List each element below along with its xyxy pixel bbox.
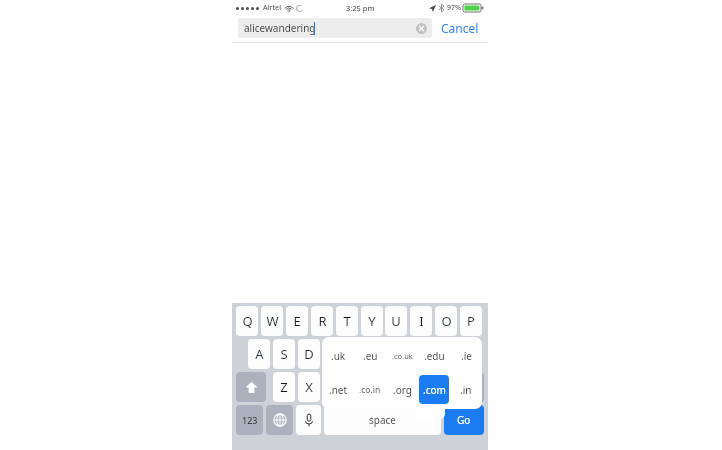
button[interactable]: Y: [361, 306, 383, 336]
staticText: .com: [423, 383, 446, 397]
button[interactable]: Backspace: [454, 372, 484, 402]
staticText: .eu: [363, 349, 378, 363]
staticText: W: [266, 312, 279, 330]
button[interactable]: Dictate: [296, 405, 321, 435]
staticText: .ie: [461, 349, 472, 363]
staticText: K: [430, 345, 439, 363]
staticText: V: [355, 378, 363, 396]
button[interactable]: Change keyboard: [266, 405, 293, 435]
staticText: Y: [368, 312, 376, 330]
staticText: C: [330, 378, 339, 396]
button[interactable]: V: [348, 372, 370, 402]
staticText: 3:25 pm: [346, 3, 375, 13]
button[interactable]: .org: [386, 375, 418, 404]
staticText: D: [304, 345, 314, 363]
staticText: 123: [242, 414, 258, 426]
button[interactable]: .eu: [354, 341, 386, 371]
button[interactable]: P: [460, 306, 482, 336]
button[interactable]: alicewandering: [238, 18, 432, 38]
button[interactable]: Clear text: [416, 23, 427, 34]
button[interactable]: A: [248, 339, 270, 369]
button[interactable]: Cancel: [436, 14, 484, 42]
staticText: X: [305, 378, 313, 396]
staticText: U: [391, 312, 401, 330]
button[interactable]: R: [311, 306, 333, 336]
button[interactable]: M: [423, 372, 445, 402]
staticText: E: [293, 312, 301, 330]
button[interactable]: J: [398, 339, 420, 369]
button[interactable]: U: [385, 306, 407, 336]
button[interactable]: Z: [273, 372, 295, 402]
button[interactable]: C: [323, 372, 345, 402]
staticText: space: [369, 413, 396, 427]
staticText: T: [343, 312, 351, 330]
staticText: L: [456, 345, 463, 363]
staticText: M: [428, 378, 440, 396]
staticText: .co.in: [359, 384, 381, 396]
staticText: alicewandering: [244, 21, 316, 35]
staticText: .edu: [424, 349, 445, 363]
button[interactable]: K: [423, 339, 445, 369]
button[interactable]: Q: [236, 306, 258, 336]
button[interactable]: F: [323, 339, 345, 369]
button[interactable]: .co.uk: [386, 341, 418, 371]
staticText: Go: [457, 413, 471, 427]
button[interactable]: .in: [450, 375, 482, 404]
staticText: R: [318, 312, 327, 330]
staticText: F: [331, 345, 338, 363]
staticText: .org: [393, 383, 412, 397]
button[interactable]: D: [298, 339, 320, 369]
staticText: N: [404, 378, 414, 396]
button[interactable]: I: [410, 306, 432, 336]
button[interactable]: B: [373, 372, 395, 402]
staticText: .uk: [331, 349, 346, 363]
button[interactable]: S: [273, 339, 295, 369]
staticText: P: [467, 312, 475, 330]
button[interactable]: T: [336, 306, 358, 336]
button[interactable]: .uk: [322, 341, 354, 371]
button[interactable]: .com: [419, 375, 449, 404]
staticText: 97%: [447, 3, 461, 13]
staticText: J: [407, 345, 411, 363]
button[interactable]: Go: [444, 405, 484, 435]
button[interactable]: .co.in: [354, 375, 386, 404]
staticText: Z: [280, 378, 288, 396]
button[interactable]: N: [398, 372, 420, 402]
button[interactable]: space: [324, 405, 441, 435]
button[interactable]: .net: [322, 375, 354, 404]
staticText: Airtel: [263, 3, 282, 13]
button[interactable]: Numbers: [236, 405, 263, 435]
button[interactable]: G: [348, 339, 370, 369]
staticText: .in: [460, 383, 472, 397]
button[interactable]: O: [435, 306, 457, 336]
button[interactable]: L: [448, 339, 470, 369]
staticText: O: [441, 312, 452, 330]
button[interactable]: .ie: [450, 341, 482, 371]
staticText: A: [255, 345, 264, 363]
staticText: I: [419, 312, 424, 330]
staticText: Q: [242, 312, 253, 330]
staticText: .co.uk: [392, 351, 413, 361]
staticText: .net: [329, 383, 348, 397]
button[interactable]: E: [286, 306, 308, 336]
button[interactable]: .edu: [418, 341, 450, 371]
button[interactable]: X: [298, 372, 320, 402]
staticText: S: [280, 345, 288, 363]
button[interactable]: W: [261, 306, 283, 336]
button[interactable]: Shift: [236, 372, 266, 402]
staticText: Cancel: [441, 20, 479, 36]
button[interactable]: H: [373, 339, 395, 369]
